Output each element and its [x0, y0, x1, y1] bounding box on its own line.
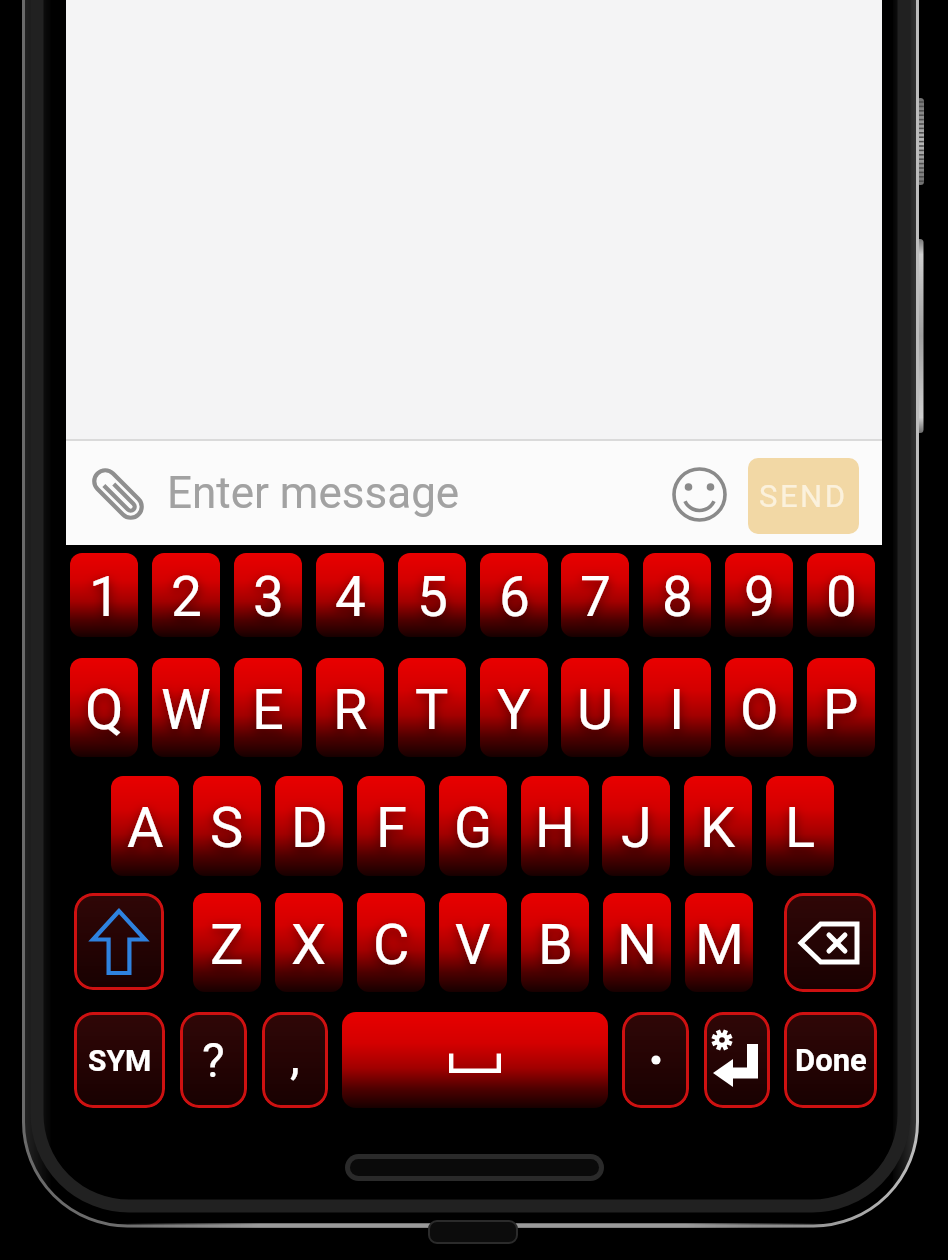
- staticText: I: [669, 677, 685, 743]
- button[interactable]: 7: [561, 553, 629, 637]
- staticText: 6: [499, 565, 530, 629]
- staticText: Q: [85, 677, 124, 743]
- staticText: H: [535, 795, 575, 861]
- button[interactable]: L: [766, 776, 834, 876]
- staticText: L: [785, 795, 816, 861]
- staticText: 1: [89, 565, 120, 629]
- button[interactable]: H: [521, 776, 589, 876]
- button[interactable]: C: [357, 893, 425, 992]
- staticText: Y: [497, 677, 531, 743]
- button[interactable]: [88, 464, 148, 524]
- button[interactable]: 4: [316, 553, 384, 637]
- staticText: P: [823, 677, 859, 743]
- button[interactable]: [622, 1012, 689, 1108]
- button[interactable]: SEND: [748, 458, 859, 534]
- button[interactable]: A: [111, 776, 179, 876]
- staticText: E: [252, 677, 284, 743]
- button[interactable]: Z: [193, 893, 261, 992]
- button[interactable]: E: [234, 658, 302, 757]
- button[interactable]: X: [275, 893, 343, 992]
- staticText: 2: [171, 565, 202, 629]
- staticText: ?: [202, 1032, 225, 1088]
- button[interactable]: 1: [70, 553, 138, 637]
- button[interactable]: M: [685, 893, 753, 992]
- button[interactable]: K: [684, 776, 752, 876]
- button[interactable]: [704, 1012, 770, 1108]
- button[interactable]: B: [521, 893, 589, 992]
- button[interactable]: S: [193, 776, 261, 876]
- staticText: 4: [335, 565, 366, 629]
- staticText: 7: [580, 565, 611, 629]
- staticText: V: [455, 912, 491, 978]
- staticText: 5: [417, 565, 448, 629]
- button[interactable]: 9: [725, 553, 793, 637]
- staticText: Enter message: [167, 467, 460, 519]
- staticText: Z: [210, 912, 244, 978]
- staticText: D: [291, 795, 328, 861]
- staticText: O: [740, 677, 779, 743]
- staticText: SEND: [759, 478, 848, 514]
- staticText: T: [415, 677, 449, 743]
- button[interactable]: 0: [807, 553, 875, 637]
- button[interactable]: T: [398, 658, 466, 757]
- staticText: SYM: [88, 1043, 152, 1078]
- button[interactable]: O: [725, 658, 793, 757]
- staticText: R: [333, 677, 368, 743]
- staticText: ,: [290, 1027, 300, 1086]
- button[interactable]: [672, 467, 727, 522]
- staticText: W: [161, 677, 211, 743]
- staticText: 0: [826, 565, 857, 629]
- button[interactable]: SYM: [74, 1012, 165, 1108]
- button[interactable]: D: [275, 776, 343, 876]
- staticText: 9: [744, 565, 775, 629]
- staticText: 3: [253, 565, 284, 629]
- button[interactable]: R: [316, 658, 384, 757]
- button[interactable]: Y: [480, 658, 548, 757]
- button[interactable]: 3: [234, 553, 302, 637]
- staticText: S: [210, 795, 244, 861]
- button[interactable]: Done: [784, 1012, 877, 1108]
- staticText: F: [376, 795, 407, 861]
- staticText: J: [621, 795, 652, 861]
- button[interactable]: [74, 893, 164, 990]
- staticText: C: [373, 912, 410, 978]
- staticText: A: [127, 795, 164, 861]
- button[interactable]: V: [439, 893, 507, 992]
- button[interactable]: Q: [70, 658, 138, 757]
- button[interactable]: 8: [643, 553, 711, 637]
- staticText: M: [695, 912, 744, 978]
- staticText: B: [538, 912, 573, 978]
- button[interactable]: [784, 893, 876, 992]
- button[interactable]: ,: [262, 1012, 328, 1108]
- staticText: N: [617, 912, 657, 978]
- button[interactable]: J: [602, 776, 670, 876]
- button[interactable]: [342, 1012, 608, 1108]
- button[interactable]: N: [603, 893, 671, 992]
- staticText: 8: [662, 565, 693, 629]
- button[interactable]: ?: [180, 1012, 247, 1108]
- button[interactable]: I: [643, 658, 711, 757]
- button[interactable]: W: [152, 658, 220, 757]
- button[interactable]: 5: [398, 553, 466, 637]
- staticText: Done: [795, 1042, 867, 1078]
- button[interactable]: G: [439, 776, 507, 876]
- button[interactable]: F: [357, 776, 425, 876]
- button[interactable]: 2: [152, 553, 220, 637]
- staticText: K: [700, 795, 736, 861]
- staticText: G: [454, 795, 493, 861]
- button[interactable]: 6: [480, 553, 548, 637]
- button[interactable]: U: [561, 658, 629, 757]
- staticText: U: [577, 677, 614, 743]
- staticText: X: [291, 912, 327, 978]
- button[interactable]: P: [807, 658, 875, 757]
